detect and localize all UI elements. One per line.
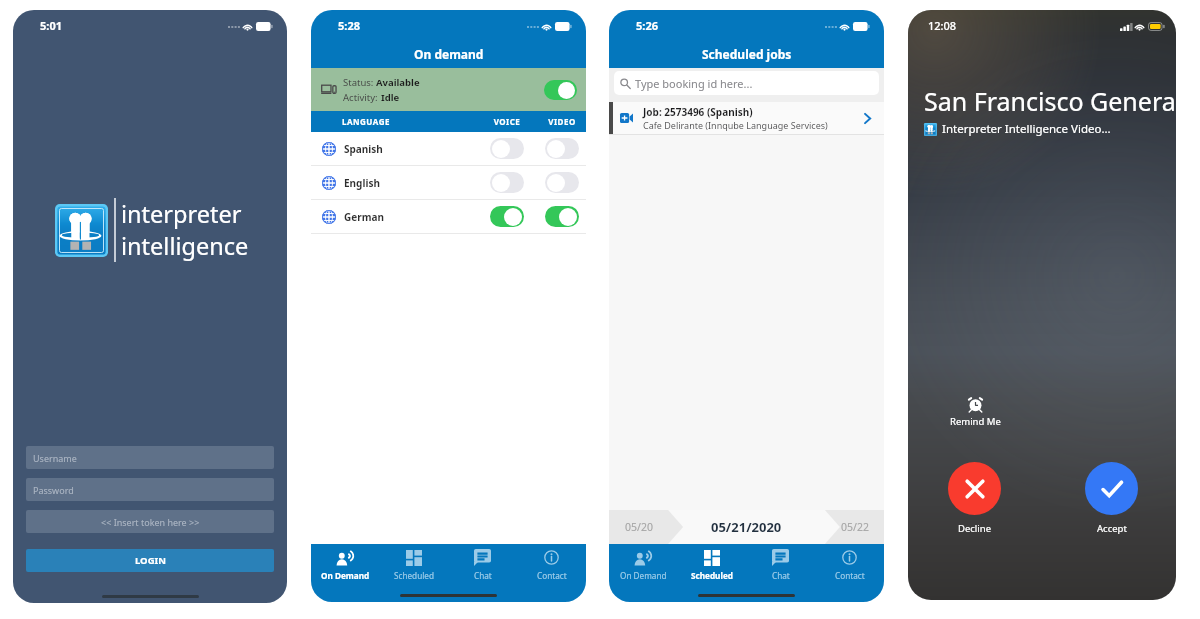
staticText: 5:26 bbox=[636, 18, 658, 33]
staticText: 05/20 bbox=[625, 520, 653, 534]
button[interactable]: 05/20 bbox=[609, 510, 668, 544]
staticText: intelligence bbox=[121, 230, 249, 262]
button[interactable]: Scheduled bbox=[379, 544, 448, 602]
staticText: 5:28 bbox=[338, 18, 360, 33]
staticText: Idle bbox=[381, 91, 400, 104]
button[interactable]: Switch off bbox=[545, 172, 579, 193]
staticText: Spanish bbox=[344, 142, 383, 156]
staticText: Cafe Delirante (Innqube Language Service… bbox=[643, 119, 828, 131]
staticText: San Francisco Genera bbox=[924, 84, 1176, 118]
button[interactable]: 05/22 bbox=[825, 510, 884, 544]
staticText: Username bbox=[33, 452, 77, 464]
button[interactable]: On Demand bbox=[311, 544, 379, 602]
staticText: Interpreter Intelligence Video... bbox=[942, 121, 1111, 137]
staticText: On Demand bbox=[620, 570, 667, 581]
staticText: Scheduled jobs bbox=[702, 46, 792, 62]
staticText: Status: bbox=[343, 76, 376, 89]
staticText: Scheduled bbox=[691, 570, 733, 581]
button[interactable]: Switch on bbox=[545, 206, 579, 227]
staticText: German bbox=[344, 210, 384, 224]
button[interactable]: Chat bbox=[746, 544, 815, 602]
button[interactable]: 05/21/2020 bbox=[668, 510, 825, 544]
button[interactable]: Switch on bbox=[490, 206, 524, 227]
staticText: Job: 2573496 (Spanish) bbox=[643, 105, 753, 119]
staticText: Decline bbox=[958, 522, 991, 535]
staticText: Contact bbox=[537, 570, 567, 581]
button[interactable]: Remind me bbox=[950, 395, 1001, 428]
button[interactable]: Type booking id here... bbox=[614, 71, 879, 95]
staticText: LOGIN bbox=[135, 554, 166, 567]
staticText: Chat bbox=[474, 570, 492, 581]
staticText: 05/21/2020 bbox=[711, 518, 782, 536]
staticText: VOICE bbox=[476, 116, 538, 127]
staticText: Accept bbox=[1097, 522, 1127, 535]
button[interactable]: Contact bbox=[517, 544, 586, 602]
staticText: Chat bbox=[772, 570, 790, 581]
staticText: On Demand bbox=[321, 570, 370, 581]
button[interactable]: Switch off bbox=[545, 138, 579, 159]
staticText: Available bbox=[376, 76, 420, 89]
button[interactable]: Accept bbox=[1085, 462, 1138, 535]
other: Remind me bbox=[968, 395, 983, 412]
button[interactable]: << Insert token here >> bbox=[26, 510, 274, 533]
staticText: VIDEO bbox=[538, 116, 586, 127]
staticText: 12:08 bbox=[928, 18, 957, 33]
other: Open job bbox=[864, 113, 871, 124]
staticText: Scheduled bbox=[394, 570, 434, 581]
staticText: Remind Me bbox=[950, 415, 1001, 428]
staticText: LANGUAGE bbox=[342, 116, 390, 127]
staticText: 05/22 bbox=[841, 520, 869, 534]
staticText: Activity: bbox=[343, 91, 381, 104]
button[interactable]: Switch on bbox=[544, 80, 577, 100]
button[interactable]: On Demand bbox=[609, 544, 677, 602]
other: Devices bbox=[321, 84, 337, 95]
button[interactable]: Decline bbox=[948, 462, 1001, 535]
button[interactable]: Switch off bbox=[490, 138, 524, 159]
staticText: Type booking id here... bbox=[635, 76, 753, 91]
button[interactable]: German bbox=[311, 200, 586, 233]
button[interactable]: Spanish bbox=[311, 132, 586, 165]
button[interactable]: Chat bbox=[448, 544, 517, 602]
button[interactable]: Password bbox=[26, 478, 274, 501]
button[interactable]: Contact bbox=[815, 544, 884, 602]
staticText: Contact bbox=[835, 570, 865, 581]
staticText: On demand bbox=[414, 46, 484, 62]
button[interactable]: LOGIN bbox=[26, 549, 274, 572]
button[interactable]: Scheduled bbox=[677, 544, 746, 602]
staticText: Password bbox=[33, 484, 74, 496]
staticText: << Insert token here >> bbox=[101, 516, 200, 528]
button[interactable]: Username bbox=[26, 446, 274, 469]
staticText: interpreter bbox=[121, 198, 242, 230]
staticText: English bbox=[344, 176, 380, 190]
staticText: 5:01 bbox=[40, 18, 62, 33]
button[interactable]: English bbox=[311, 166, 586, 199]
button[interactable]: Switch off bbox=[490, 172, 524, 193]
button[interactable]: Job: 2573496 (Spanish) bbox=[609, 102, 884, 134]
